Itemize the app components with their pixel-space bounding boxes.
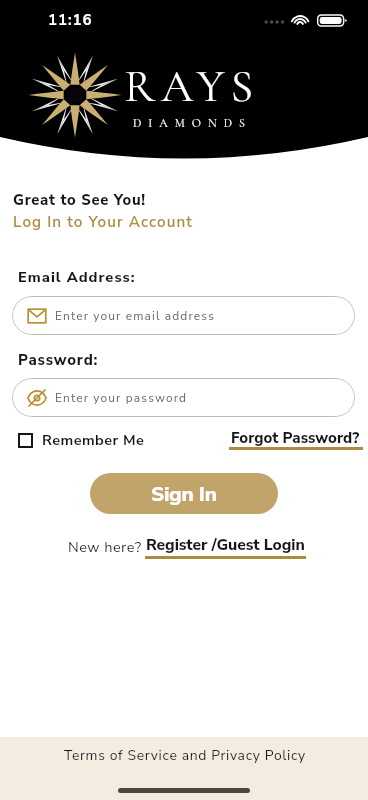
button[interactable]: Register /Guest Login: [145, 534, 306, 560]
button[interactable]: Remember Me: [18, 430, 145, 450]
button[interactable]: Email address: [12, 296, 355, 335]
staticText: Register /Guest Login: [146, 534, 305, 555]
staticText: Remember Me: [42, 430, 145, 450]
staticText: Enter your email address: [55, 308, 216, 324]
staticText: Great to See You!: [13, 190, 146, 210]
staticText: DIAMONDS: [133, 116, 252, 131]
button[interactable]: Sign In: [90, 473, 278, 514]
staticText: Password:: [18, 350, 99, 370]
staticText: Forgot Password?: [231, 428, 360, 448]
staticText: New here?: [68, 537, 142, 557]
staticText: Email Address:: [18, 267, 136, 287]
staticText: Log In to Your Account: [13, 212, 193, 233]
button[interactable]: Terms of Service and Privacy Policy: [64, 746, 306, 765]
staticText: Sign In: [151, 480, 217, 508]
staticText: Enter your password: [55, 390, 188, 406]
button[interactable]: Password: [12, 378, 355, 417]
staticText: RAYS: [124, 58, 260, 114]
staticText: 11:16: [48, 10, 93, 30]
button[interactable]: Forgot Password?: [229, 428, 363, 452]
